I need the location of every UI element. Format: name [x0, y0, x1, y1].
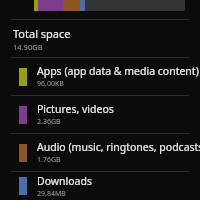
button[interactable]: Pictures, videos	[0, 96, 200, 133]
button[interactable]: Downloads	[0, 172, 200, 200]
staticText: 2.36GB	[37, 117, 61, 127]
staticText: 14.90GB	[13, 42, 43, 52]
button[interactable]: Apps (app data & media content)	[0, 58, 200, 95]
staticText: 96.00KB	[37, 79, 64, 89]
staticText: 1.76GB	[37, 155, 61, 165]
staticText: Total space	[13, 26, 71, 41]
staticText: Downloads	[37, 174, 92, 188]
staticText: 29.84MB	[37, 189, 66, 199]
staticText: Audio (music, ringtones, podcasts)	[37, 140, 200, 154]
staticText: Pictures, videos	[37, 102, 114, 116]
button[interactable]: Audio (music, ringtones, podcasts)	[0, 134, 200, 171]
staticText: Apps (app data & media content)	[37, 64, 199, 78]
button[interactable]: Total space	[0, 20, 200, 57]
